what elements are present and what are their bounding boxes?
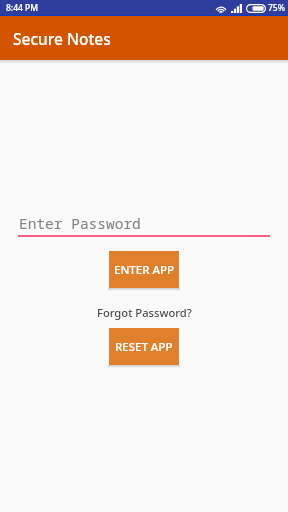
other: Mobile signal xyxy=(231,4,242,13)
button[interactable]: RESET APP xyxy=(109,328,179,365)
staticText: RESET APP xyxy=(115,339,173,355)
button[interactable]: ENTER APP xyxy=(109,251,179,288)
button[interactable]: Enter Password xyxy=(18,207,270,238)
other: Wi-Fi connected xyxy=(215,3,227,13)
other: Battery 75 percent xyxy=(246,4,266,13)
staticText: 8:44 PM xyxy=(6,2,39,14)
staticText: Secure Notes xyxy=(13,28,111,49)
button[interactable]: Forgot Password? xyxy=(94,302,194,322)
staticText: ENTER APP xyxy=(114,262,175,278)
staticText: 75% xyxy=(268,2,285,14)
staticText: Enter Password xyxy=(19,213,141,233)
staticText: Forgot Password? xyxy=(97,305,192,320)
